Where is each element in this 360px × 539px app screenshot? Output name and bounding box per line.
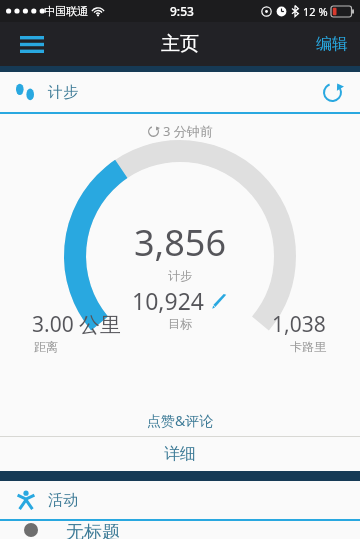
button[interactable]: 活动	[0, 481, 360, 519]
staticText: 活动	[48, 491, 78, 510]
button[interactable]: Edit goal	[210, 292, 228, 310]
staticText: 10,924	[132, 285, 204, 316]
staticText: 详细	[164, 444, 196, 464]
staticText: 12 %	[303, 4, 328, 19]
staticText: 距离	[34, 339, 58, 354]
staticText: 主页	[161, 32, 199, 56]
staticText: 3 分钟前	[163, 122, 213, 140]
staticText: 编辑	[316, 34, 348, 54]
staticText: 点赞&评论	[147, 411, 214, 430]
button[interactable]: 点赞&评论	[0, 404, 360, 436]
staticText: 3.00 公里	[32, 310, 122, 339]
staticText: 3,856	[134, 218, 227, 267]
staticText: 目标	[168, 316, 192, 331]
button[interactable]: Menu	[12, 24, 52, 64]
staticText: 9:53	[170, 3, 194, 19]
staticText: 计步	[168, 268, 192, 283]
button[interactable]: 计步	[0, 72, 360, 112]
button[interactable]: 无标题	[0, 521, 360, 539]
staticText: 卡路里	[290, 339, 326, 354]
staticText: 中国联通	[44, 4, 88, 18]
button[interactable]: 详细	[0, 437, 360, 471]
staticText: 计步	[48, 83, 78, 102]
button[interactable]: 编辑	[304, 26, 360, 62]
staticText: 无标题	[66, 521, 120, 539]
staticText: 1,038	[272, 310, 326, 339]
button[interactable]: Refresh	[314, 74, 350, 110]
